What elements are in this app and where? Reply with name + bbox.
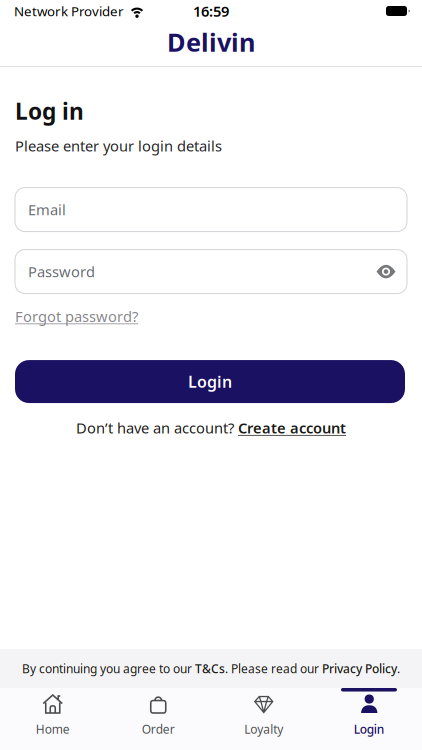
staticText: 16:59 bbox=[193, 1, 229, 21]
button[interactable]: Order bbox=[105, 687, 211, 742]
button[interactable] bbox=[376, 262, 396, 282]
button[interactable]: Loyalty bbox=[211, 687, 316, 742]
staticText: Please enter your login details bbox=[15, 136, 222, 156]
button[interactable]: Home bbox=[0, 687, 105, 742]
staticText: Log in bbox=[15, 96, 84, 126]
staticText: Password bbox=[28, 262, 95, 281]
staticText: Forgot password? bbox=[15, 307, 138, 326]
button[interactable]: Password bbox=[15, 250, 407, 294]
button[interactable]: Forgot password? bbox=[15, 307, 138, 326]
button[interactable]: By continuing you agree to our T&Cs. Ple… bbox=[22, 660, 400, 676]
staticText: Login bbox=[354, 721, 385, 737]
staticText: By continuing you agree to our T&Cs. Ple… bbox=[22, 660, 400, 676]
button[interactable]: Email bbox=[15, 188, 407, 232]
staticText: Order bbox=[142, 721, 175, 737]
staticText: Network Provider bbox=[14, 2, 124, 20]
staticText: Email bbox=[28, 200, 66, 219]
staticText: Home bbox=[36, 721, 70, 737]
staticText: Don’t have an account? Create account bbox=[76, 418, 346, 438]
staticText: Delivin bbox=[167, 25, 255, 59]
button[interactable]: Login bbox=[15, 360, 405, 403]
staticText: Login bbox=[188, 371, 232, 392]
button[interactable]: Don’t have an account? Create account bbox=[76, 418, 346, 438]
button[interactable]: Login bbox=[316, 687, 422, 742]
staticText: Loyalty bbox=[244, 721, 283, 737]
